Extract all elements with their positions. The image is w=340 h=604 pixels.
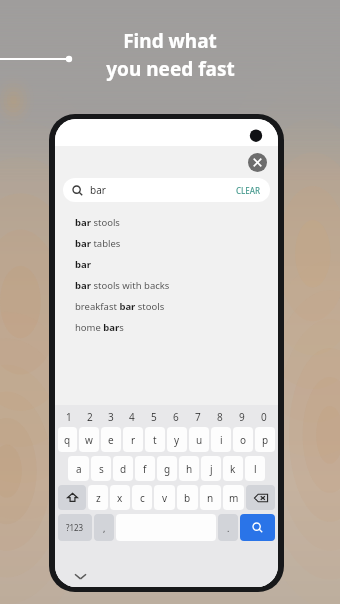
button[interactable]: Search <box>240 514 275 541</box>
button[interactable]: ?123 <box>58 514 92 541</box>
button[interactable]: 7 <box>187 408 209 425</box>
staticText: ?123 <box>66 522 84 533</box>
staticText: j <box>210 462 213 476</box>
button[interactable]: t <box>145 427 165 452</box>
button[interactable]: 6 <box>165 408 187 425</box>
button[interactable]: r <box>123 427 143 452</box>
staticText: l <box>254 462 257 476</box>
button[interactable]: Hide keyboard <box>75 571 86 582</box>
button[interactable]: breakfast bar stools <box>55 296 278 317</box>
staticText: a <box>76 462 82 476</box>
button[interactable]: bar stools <box>55 212 278 233</box>
button[interactable]: Close <box>248 153 267 172</box>
button[interactable]: o <box>233 427 253 452</box>
staticText: bar stools <box>75 216 120 229</box>
button[interactable]: w <box>79 427 99 452</box>
staticText: you need fast <box>106 56 235 82</box>
button[interactable]: Comma <box>94 514 114 541</box>
staticText: bar <box>75 258 91 271</box>
staticText: 1 <box>66 410 72 424</box>
button[interactable]: 2 <box>79 408 100 425</box>
staticText: x <box>117 491 123 505</box>
staticText: , <box>103 522 106 534</box>
button[interactable]: z <box>88 485 108 510</box>
button[interactable]: g <box>157 456 177 481</box>
button[interactable]: Backspace <box>246 485 275 510</box>
staticText: i <box>220 433 223 447</box>
staticText: bar tables <box>75 237 121 250</box>
button[interactable]: k <box>223 456 243 481</box>
button[interactable]: n <box>200 485 221 510</box>
staticText: s <box>99 462 104 476</box>
button[interactable]: Shift <box>58 485 86 510</box>
button[interactable]: u <box>189 427 209 452</box>
button[interactable]: home bars <box>55 317 278 338</box>
staticText: c <box>140 491 145 505</box>
button[interactable]: 8 <box>209 408 231 425</box>
staticText: home bars <box>75 321 124 334</box>
staticText: u <box>196 433 203 447</box>
staticText: 2 <box>87 410 93 424</box>
staticText: p <box>262 433 269 447</box>
staticText: o <box>240 433 247 447</box>
staticText: CLEAR <box>236 185 261 196</box>
button[interactable]: bar <box>63 178 270 202</box>
staticText: f <box>143 462 147 476</box>
staticText: 6 <box>173 410 179 424</box>
staticText: h <box>186 462 193 476</box>
staticText: t <box>153 433 157 447</box>
staticText: n <box>207 491 214 505</box>
staticText: 0 <box>261 410 267 424</box>
button[interactable]: e <box>101 427 121 452</box>
button[interactable]: c <box>132 485 152 510</box>
staticText: e <box>108 433 114 447</box>
button[interactable]: h <box>179 456 199 481</box>
button[interactable]: a <box>68 456 89 481</box>
staticText: z <box>96 491 101 505</box>
button[interactable]: m <box>223 485 244 510</box>
staticText: k <box>230 462 236 476</box>
staticText: breakfast bar stools <box>75 300 165 313</box>
button[interactable]: 4 <box>121 408 143 425</box>
button[interactable]: l <box>245 456 265 481</box>
button[interactable]: d <box>113 456 133 481</box>
staticText: . <box>227 522 230 534</box>
button[interactable]: v <box>154 485 175 510</box>
staticText: w <box>85 433 93 447</box>
button[interactable]: s <box>91 456 111 481</box>
button[interactable]: bar stools with backs <box>55 275 278 296</box>
button[interactable]: x <box>110 485 130 510</box>
staticText: d <box>120 462 127 476</box>
staticText: g <box>164 462 171 476</box>
button[interactable]: b <box>177 485 198 510</box>
button[interactable]: p <box>255 427 275 452</box>
staticText: bar <box>90 183 106 197</box>
button[interactable]: q <box>58 427 77 452</box>
staticText: 5 <box>151 410 157 424</box>
button[interactable]: 0 <box>253 408 275 425</box>
staticText: r <box>131 433 136 447</box>
staticText: 8 <box>217 410 223 424</box>
staticText: 3 <box>108 410 114 424</box>
staticText: y <box>174 433 180 447</box>
staticText: q <box>64 433 71 447</box>
button[interactable]: 5 <box>143 408 165 425</box>
button[interactable]: 3 <box>100 408 121 425</box>
staticText: 7 <box>195 410 201 424</box>
button[interactable]: 1 <box>58 408 79 425</box>
button[interactable]: Period <box>218 514 238 541</box>
button[interactable]: f <box>135 456 155 481</box>
staticText: 4 <box>129 410 135 424</box>
staticText: Find what <box>123 28 217 54</box>
staticText: m <box>229 491 239 505</box>
button[interactable]: bar <box>55 254 278 275</box>
staticText: b <box>184 491 191 505</box>
button[interactable]: j <box>201 456 221 481</box>
button[interactable]: i <box>211 427 231 452</box>
button[interactable]: 9 <box>231 408 253 425</box>
button[interactable]: y <box>167 427 187 452</box>
button[interactable]: bar tables <box>55 233 278 254</box>
staticText: bar stools with backs <box>75 279 170 292</box>
staticText: v <box>162 491 168 505</box>
